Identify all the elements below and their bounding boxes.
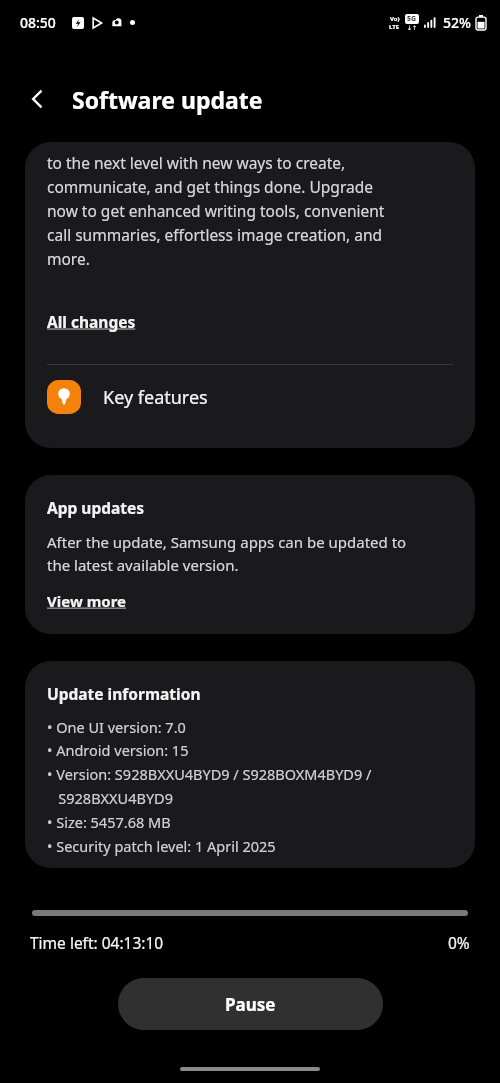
staticText: Vo)	[390, 15, 400, 23]
staticText: 5G	[407, 14, 417, 24]
staticText: App updates	[47, 497, 145, 518]
staticText: 52%	[443, 13, 471, 32]
staticText: Software update	[72, 84, 263, 115]
staticText: 0%	[448, 932, 470, 953]
button[interactable]: Back	[14, 75, 62, 123]
staticText: After the update, Samsung apps can be up…	[47, 532, 407, 575]
staticText: • One UI version: 7.0 • Android version:…	[47, 717, 372, 857]
button[interactable]: Pause	[118, 978, 383, 1030]
staticText: Key features	[103, 385, 208, 410]
staticText: Update information	[47, 683, 201, 704]
button[interactable]: Key features	[47, 365, 453, 429]
staticText: Pause	[225, 993, 276, 1016]
staticText: LTE	[389, 23, 400, 31]
staticText: to the next level with new ways to creat…	[47, 152, 385, 269]
staticText: 08:50	[20, 13, 56, 32]
staticText: ↓↑	[407, 24, 418, 31]
staticText: All changes	[47, 311, 136, 332]
staticText: Time left: 04:13:10	[30, 932, 164, 953]
button[interactable]: All changes	[47, 311, 136, 332]
staticText: View more	[47, 591, 126, 611]
button[interactable]: View more	[47, 591, 126, 611]
